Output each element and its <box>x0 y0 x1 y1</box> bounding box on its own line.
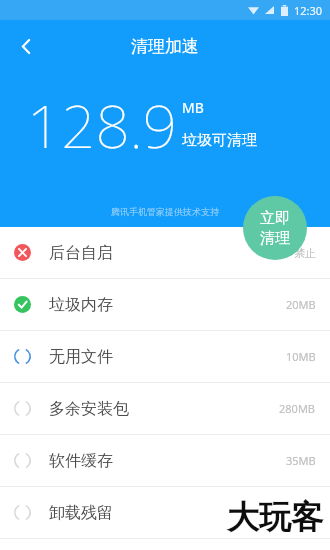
button[interactable]: 立即 <box>243 196 307 260</box>
button[interactable]: 无用文件 <box>0 331 330 382</box>
staticText: 禁止 <box>294 246 316 260</box>
staticText: 垃圾可清理 <box>182 131 257 150</box>
staticText: 卸载残留 <box>49 503 113 523</box>
staticText: 128.9 <box>27 84 177 166</box>
button[interactable]: 软件缓存 <box>0 435 330 486</box>
staticText: 腾讯手机管家提供技术支持 <box>111 206 219 217</box>
staticText: 280MB <box>279 401 316 416</box>
staticText: 垃圾内存 <box>49 295 113 315</box>
button[interactable]: Back <box>6 26 46 66</box>
staticText: 软件缓存 <box>49 451 113 471</box>
staticText: 后台自启 <box>49 243 113 263</box>
staticText: 20MB <box>286 297 316 312</box>
staticText: 多余安装包 <box>49 399 129 419</box>
button[interactable]: 后台自启 <box>0 227 330 278</box>
button[interactable]: 卸载残留 <box>0 487 330 538</box>
staticText: 清理加速 <box>131 36 199 57</box>
staticText: 大玩客 <box>227 497 323 537</box>
button[interactable]: 垃圾内存 <box>0 279 330 330</box>
staticText: 无用文件 <box>49 347 113 367</box>
staticText: 10MB <box>286 349 316 364</box>
staticText: MB <box>182 98 204 117</box>
staticText: 35MB <box>286 453 316 468</box>
button[interactable]: 多余安装包 <box>0 383 330 434</box>
staticText: 12:30 <box>294 3 323 18</box>
staticText: 清理 <box>260 229 290 248</box>
staticText: 立即 <box>260 209 290 228</box>
